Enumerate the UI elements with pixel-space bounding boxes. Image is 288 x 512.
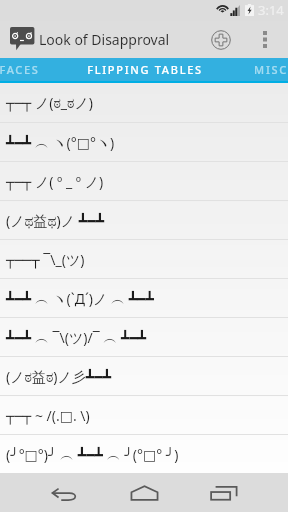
button[interactable]: Back: [41, 473, 87, 512]
button[interactable]: (ノಠ益ಠ)ノ彡┻━┻: [0, 357, 288, 395]
button[interactable]: ┬─┬ ノ( º _ º ノ): [0, 162, 288, 200]
button[interactable]: FLIPPING TABLES: [82, 58, 208, 81]
button[interactable]: ┬──┬ ¯\_(ツ): [0, 240, 288, 278]
staticText: FACES: [0, 62, 40, 77]
button[interactable]: FACES: [0, 58, 82, 81]
staticText: ┻━┻ ︵ ヽ(`Д´)ノ ︵ ┻━┻: [6, 289, 154, 308]
staticText: ┬─┬ ~ /(.□. \): [6, 406, 90, 425]
button[interactable]: MISC: [208, 58, 288, 81]
staticText: Look of Disapproval: [39, 30, 170, 49]
button[interactable]: Home: [121, 473, 167, 512]
staticText: ┻━┻ ︵ ¯\(ツ)/¯ ︵ ┻━┻: [6, 328, 147, 347]
staticText: ┻━┻ ︵ ヽ(°□°ヽ): [6, 133, 115, 152]
staticText: ┬──┬ ¯\_(ツ): [6, 250, 85, 269]
button[interactable]: ┻━┻ ︵ ヽ(`Д´)ノ ︵ ┻━┻: [0, 279, 288, 317]
staticText: MISC: [254, 62, 288, 77]
button[interactable]: ┬─┬ ノ(ಠ_ಠノ): [0, 83, 288, 122]
button[interactable]: ┻━┻ ︵ ¯\(ツ)/¯ ︵ ┻━┻: [0, 318, 288, 356]
staticText: (ノಠ益ಠ)ノ彡┻━┻: [6, 367, 112, 386]
staticText: 3:14: [258, 1, 284, 19]
button[interactable]: ┻━┻ ︵ ヽ(°□°ヽ): [0, 123, 288, 161]
button[interactable]: (╯°□°)╯ ︵ ┻━┻ ︵ ╯(°□° ╯): [0, 435, 288, 473]
staticText: ┬─┬ ノ(ಠ_ಠノ): [6, 93, 94, 112]
button[interactable]: More options: [248, 21, 282, 58]
button[interactable]: ┬─┬ ~ /(.□. \): [0, 396, 288, 434]
staticText: FLIPPING TABLES: [87, 62, 203, 77]
staticText: (ノಥ益ಥ)ノ ┻━┻: [6, 211, 105, 230]
button[interactable]: Add: [194, 21, 248, 58]
staticText: (╯°□°)╯ ︵ ┻━┻ ︵ ╯(°□° ╯): [6, 445, 179, 464]
button[interactable]: Recent apps: [201, 473, 247, 512]
staticText: ┬─┬ ノ( º _ º ノ): [6, 172, 104, 191]
button[interactable]: (ノಥ益ಥ)ノ ┻━┻: [0, 201, 288, 239]
